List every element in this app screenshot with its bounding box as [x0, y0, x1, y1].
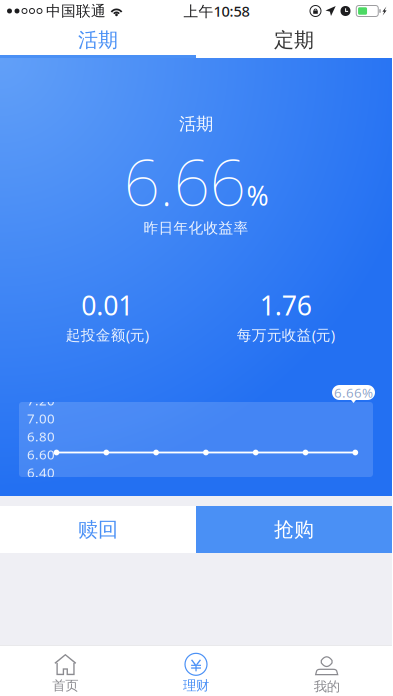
button[interactable]: 我的	[261, 649, 392, 696]
button[interactable]: 首页	[0, 649, 131, 696]
staticText: 7.20	[27, 391, 55, 409]
staticText: 6.60	[27, 445, 55, 463]
staticText: 我的	[314, 678, 340, 695]
button[interactable]: 赎回	[0, 506, 196, 553]
staticText: 6.66	[123, 138, 245, 223]
staticText: 首页	[52, 677, 78, 694]
button[interactable]: 定期	[196, 22, 392, 58]
staticText: 定期	[274, 28, 314, 52]
staticText: 6.80	[27, 427, 55, 445]
button[interactable]: 活期	[0, 22, 196, 58]
staticText: 昨日年化收益率	[143, 219, 248, 237]
staticText: 活期	[78, 28, 118, 52]
staticText: %	[246, 178, 268, 213]
staticText: 抢购	[274, 517, 314, 542]
staticText: 赎回	[78, 517, 118, 542]
staticText: 7.00	[27, 409, 55, 427]
staticText: 6.40	[27, 463, 55, 481]
staticText: 上午10:58	[183, 1, 249, 21]
staticText: 每万元收益(元)	[237, 325, 335, 344]
staticText: 起投金额(元)	[66, 325, 149, 344]
staticText: 6.66%	[334, 384, 373, 401]
staticText: 1.76	[260, 288, 312, 323]
staticText: 理财	[183, 677, 209, 694]
staticText: 中国联通	[46, 2, 106, 20]
staticText: 活期	[179, 113, 213, 135]
button[interactable]: 理财	[131, 649, 261, 696]
staticText: 0.01	[81, 288, 133, 323]
button[interactable]: 抢购	[196, 506, 392, 553]
